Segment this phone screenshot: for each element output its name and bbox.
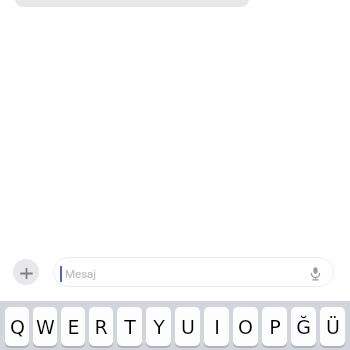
staticText: O <box>238 316 253 338</box>
button[interactable]: Voice message <box>304 261 326 283</box>
button[interactable]: Y <box>146 307 171 346</box>
button[interactable]: Mesaj <box>53 257 334 287</box>
staticText: R <box>94 316 108 338</box>
staticText: I <box>214 316 220 338</box>
staticText: Q <box>10 316 25 338</box>
button[interactable]: I <box>204 307 229 346</box>
button[interactable]: U <box>175 307 200 346</box>
button[interactable]: Add attachment <box>13 259 39 285</box>
staticText: W <box>36 316 55 338</box>
button[interactable]: W <box>33 307 57 346</box>
button[interactable]: R <box>89 307 113 346</box>
staticText: T <box>124 316 136 338</box>
button[interactable]: P <box>262 307 287 346</box>
button[interactable]: E <box>61 307 85 346</box>
button[interactable]: O <box>233 307 258 346</box>
staticText: E <box>67 316 80 338</box>
staticText: Ğ <box>296 316 311 338</box>
staticText: Mesaj <box>65 267 97 280</box>
staticText: Ü <box>326 316 340 338</box>
button[interactable]: T <box>117 307 142 346</box>
button[interactable]: Ü <box>320 307 345 346</box>
staticText: P <box>269 316 281 338</box>
staticText: Y <box>153 316 165 338</box>
button[interactable]: Ğ <box>291 307 316 346</box>
staticText: U <box>181 316 195 338</box>
button[interactable]: Q <box>5 307 29 346</box>
